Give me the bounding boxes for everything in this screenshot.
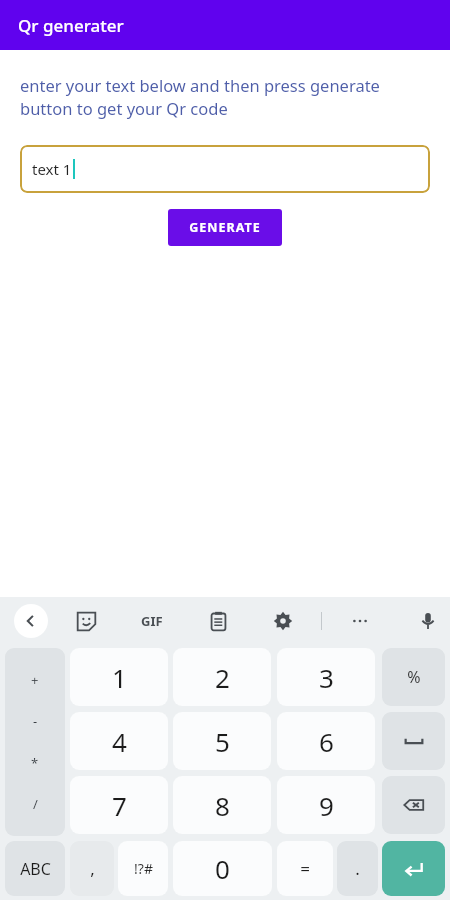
button[interactable]: 9 [277, 776, 375, 834]
staticText: text 1 [32, 159, 72, 179]
button[interactable]: % [382, 648, 445, 706]
staticText: enter your text below and then press gen… [20, 74, 430, 120]
button[interactable]: text 1 [20, 145, 430, 193]
button[interactable]: Voice input [410, 603, 446, 639]
button[interactable]: Back [14, 604, 48, 638]
button[interactable]: + [5, 648, 65, 836]
staticText: * [31, 754, 39, 772]
staticText: 6 [319, 724, 334, 759]
staticText: % [407, 666, 421, 688]
staticText: 5 [215, 724, 230, 759]
button[interactable]: Stickers [68, 603, 104, 639]
staticText: 2 [215, 660, 230, 695]
staticText: GIF [141, 612, 163, 630]
staticText: . [355, 857, 360, 880]
button[interactable]: 0 [173, 841, 272, 896]
staticText: 3 [319, 660, 334, 695]
button[interactable]: Backspace [382, 776, 445, 834]
button[interactable]: Enter [382, 841, 445, 896]
button[interactable]: GIF [134, 603, 170, 639]
staticText: , [90, 857, 95, 880]
staticText: = [300, 857, 310, 880]
button[interactable]: ABC [5, 841, 65, 896]
button[interactable]: 4 [70, 712, 168, 770]
button[interactable]: Settings [265, 603, 301, 639]
button[interactable]: 1 [70, 648, 168, 706]
button[interactable]: . [337, 841, 378, 896]
staticText: 1 [112, 660, 127, 695]
button[interactable]: 2 [173, 648, 271, 706]
button[interactable]: 5 [173, 712, 271, 770]
button[interactable]: 6 [277, 712, 375, 770]
staticText: 0 [215, 851, 230, 886]
button[interactable]: 7 [70, 776, 168, 834]
staticText: + [31, 671, 39, 689]
button[interactable]: , [70, 841, 114, 896]
button[interactable]: !?# [118, 841, 168, 896]
staticText: ABC [20, 858, 51, 880]
staticText: 9 [319, 788, 334, 823]
button[interactable]: = [277, 841, 333, 896]
button[interactable]: Space [382, 712, 445, 770]
button[interactable]: More options [342, 603, 378, 639]
staticText: 7 [112, 788, 127, 823]
staticText: GENERATE [189, 219, 261, 236]
staticText: / [33, 795, 38, 813]
staticText: - [33, 712, 38, 730]
staticText: 8 [215, 788, 230, 823]
staticText: Qr generater [18, 14, 124, 37]
staticText: 4 [112, 724, 127, 759]
staticText: !?# [134, 859, 153, 878]
button[interactable]: GENERATE [168, 209, 282, 246]
button[interactable]: 3 [277, 648, 375, 706]
button[interactable]: Clipboard [200, 603, 236, 639]
button[interactable]: 8 [173, 776, 271, 834]
